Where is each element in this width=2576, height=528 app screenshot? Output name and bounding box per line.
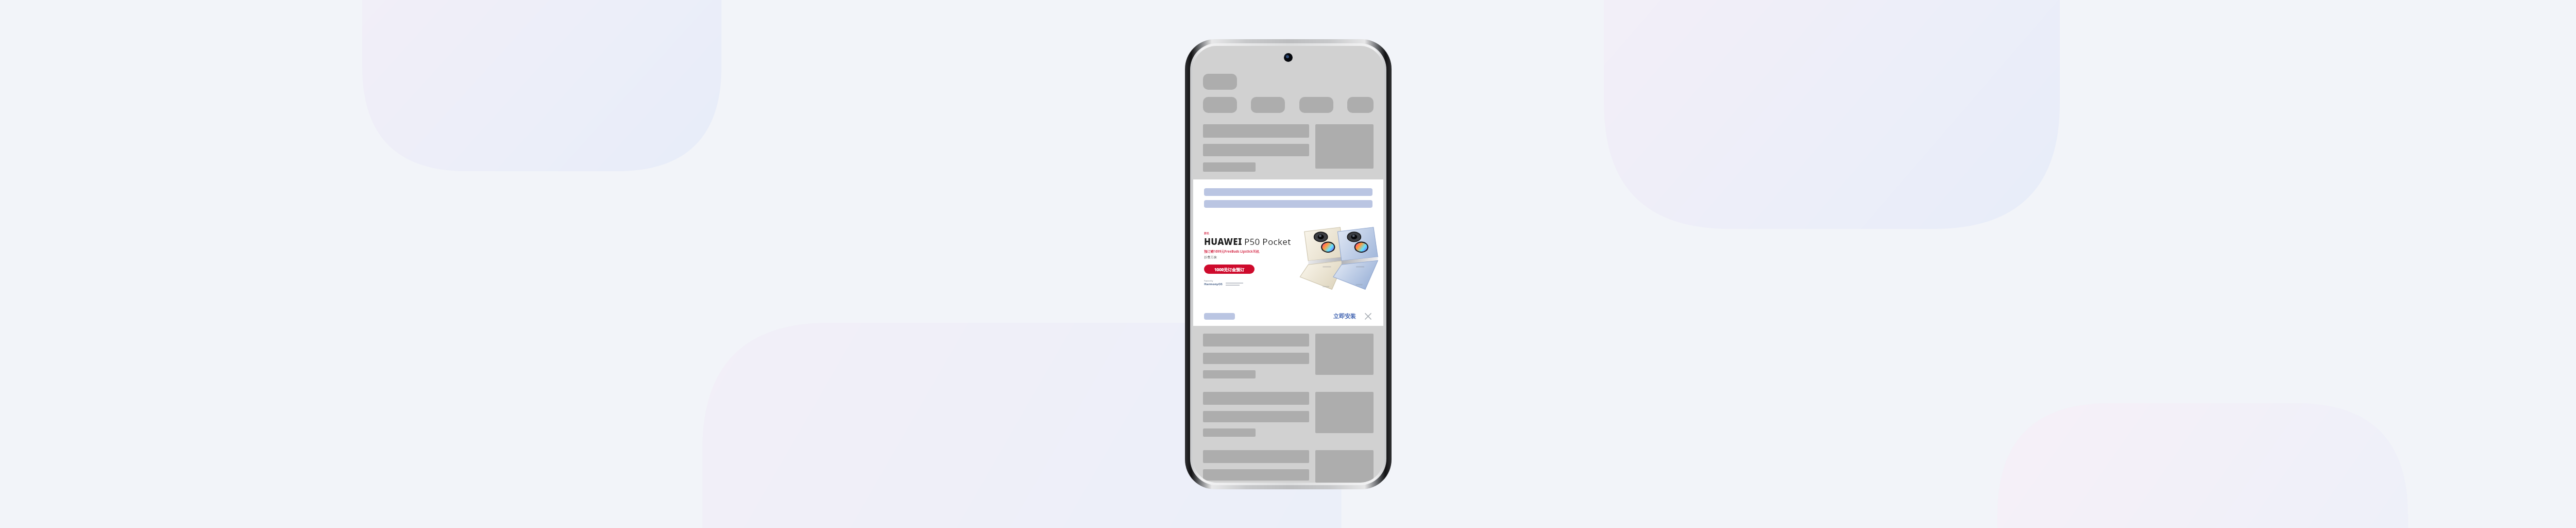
staticText: 1000元订金预订 <box>1214 267 1245 272</box>
button[interactable]: 新色 <box>1193 208 1383 306</box>
button[interactable]: 1000元订金预订 <box>1204 265 1255 274</box>
staticText: Powered by <box>1204 280 1213 282</box>
staticText: 预订赠1699元FreeBuds Lipstick耳机 <box>1204 249 1260 254</box>
button[interactable]: 立即安装 <box>1332 311 1358 321</box>
staticText: HarmonyOS <box>1204 282 1223 286</box>
staticText: 立即安装 <box>1333 312 1356 320</box>
staticText: 折叠万象 <box>1204 255 1217 259</box>
staticText: HUAWEI <box>1204 236 1242 247</box>
button[interactable]: Close ad <box>1363 311 1372 321</box>
staticText: 新色 <box>1204 232 1209 235</box>
staticText: P50 Pocket <box>1244 236 1291 247</box>
